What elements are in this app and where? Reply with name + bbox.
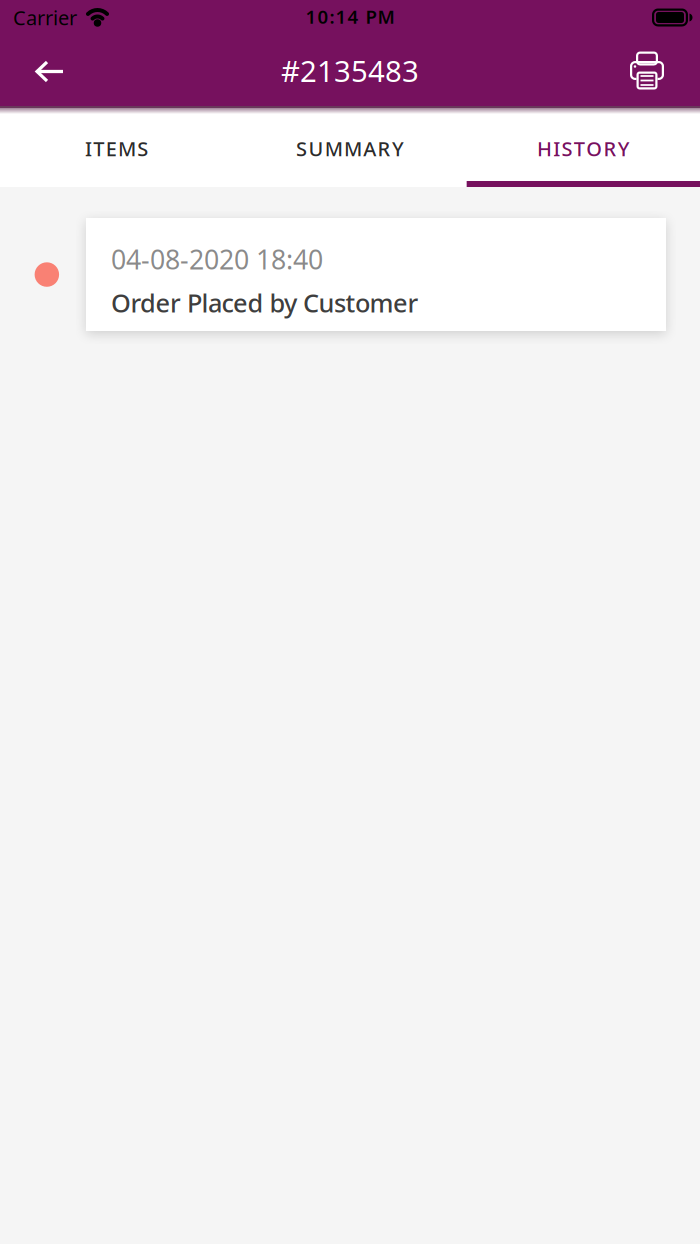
button[interactable]: ITEMS [0,106,233,187]
staticText: 04-08-2020 18:40 [111,241,323,277]
button[interactable]: HISTORY [467,106,700,187]
staticText: Order Placed by Customer [111,286,418,319]
staticText: ITEMS [85,135,148,162]
staticText: HISTORY [537,135,630,162]
staticText: Carrier [13,4,77,31]
button[interactable]: SUMMARY [233,106,467,187]
button[interactable]: Back [23,35,77,106]
staticText: 10:14 PM [305,4,394,29]
button[interactable]: Print [619,35,675,106]
staticText: SUMMARY [296,135,404,162]
staticText: #2135483 [281,51,419,90]
